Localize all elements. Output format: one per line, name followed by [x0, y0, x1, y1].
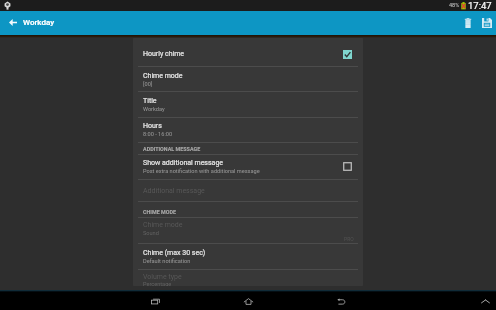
staticText: 48%	[449, 2, 460, 8]
staticText: PRO	[344, 236, 354, 242]
button[interactable]: Delete	[456, 11, 480, 35]
button[interactable]: Show notifications	[477, 293, 494, 309]
staticText: Percentage	[143, 281, 172, 286]
button[interactable]: Save	[475, 11, 496, 35]
button[interactable]: Hourly chime toggle	[338, 45, 356, 63]
staticText: Post extra notification with additional …	[143, 168, 260, 175]
staticText: 17:47	[468, 0, 492, 11]
staticText: [00]	[143, 81, 153, 88]
staticText: Chime mode	[143, 221, 183, 229]
staticText: Sound	[143, 230, 159, 237]
staticText: Additional message	[143, 187, 205, 195]
staticText: Hours	[143, 122, 162, 130]
staticText: Workday	[143, 106, 165, 113]
staticText: Show additional message	[143, 159, 224, 167]
staticText: Title	[143, 97, 157, 105]
button[interactable]: Home	[239, 292, 257, 310]
button[interactable]: Navigate up	[1, 10, 24, 34]
staticText: Chime mode	[143, 72, 183, 80]
staticText: Volume type	[143, 273, 182, 281]
staticText: Default notification	[143, 258, 191, 265]
staticText: CHIME MODE	[143, 209, 176, 215]
button[interactable]: Back	[332, 292, 350, 310]
staticText: Chime (max 30 sec)	[143, 249, 206, 257]
staticText: Workday	[23, 18, 55, 27]
staticText: Hourly chime	[143, 50, 185, 58]
button[interactable]: Show additional message toggle	[338, 157, 356, 175]
staticText: 8:00 - 16:00	[143, 131, 173, 138]
staticText: ADDITIONAL MESSAGE	[143, 146, 201, 152]
button[interactable]: Recent apps	[146, 292, 164, 310]
